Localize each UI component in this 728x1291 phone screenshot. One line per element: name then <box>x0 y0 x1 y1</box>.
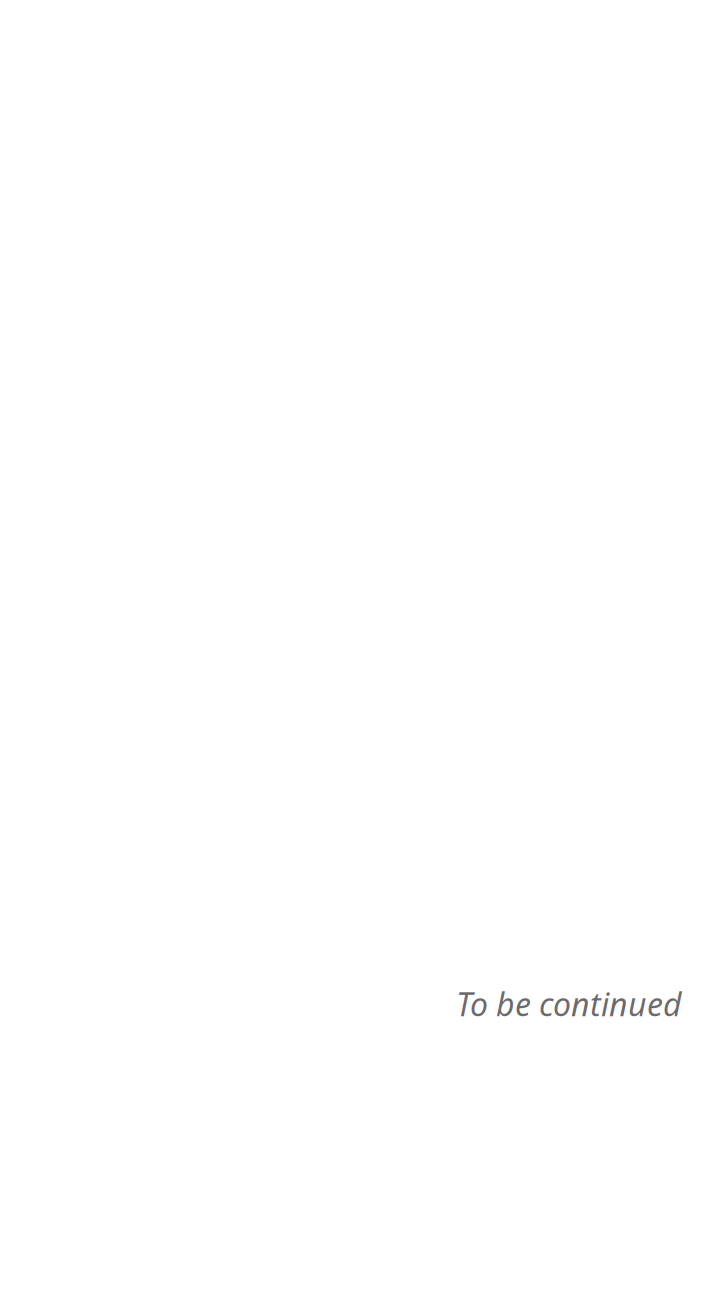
staticText: To be continued <box>456 982 682 1025</box>
